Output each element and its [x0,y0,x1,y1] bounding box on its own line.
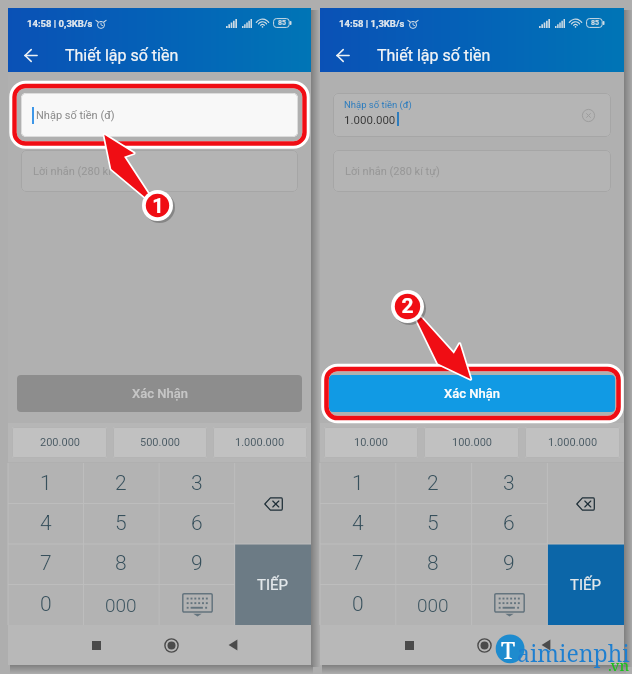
button[interactable]: 10.000 [324,427,418,458]
button[interactable]: 8 [83,543,159,584]
staticText: aimienphi [517,637,630,668]
staticText: 10.000 [354,436,388,449]
button[interactable]: Nhập số tiền (đ) [333,93,611,137]
button[interactable]: Backspace [547,463,624,544]
button[interactable]: Back [326,38,360,72]
button[interactable]: Recent apps [52,625,140,665]
button[interactable]: 4 [8,503,83,543]
button[interactable]: 1 [320,463,395,503]
button[interactable]: 8 [395,543,471,584]
staticText: 85 [278,19,287,27]
staticText: 9 [503,551,515,576]
button[interactable]: 000 [83,584,159,625]
staticText: 6 [503,511,515,536]
button[interactable]: 200.000 [12,427,107,458]
button[interactable]: Back [14,38,48,72]
staticText: 3 [503,471,515,496]
button[interactable]: 5 [83,503,159,543]
button[interactable]: Hide keyboard [159,584,235,625]
staticText: 200.000 [40,436,80,449]
button[interactable]: 1.000.000 [525,427,620,458]
staticText: 6 [191,511,203,536]
button[interactable]: 5 [395,503,471,543]
button[interactable]: TIẾP [235,544,311,625]
button[interactable]: Home [453,625,516,665]
staticText: Lời nhắn (280 kí tự) [345,165,440,178]
button[interactable]: 9 [159,543,235,584]
button[interactable]: 1 [8,463,83,503]
staticText: 85 [591,19,600,27]
button[interactable]: Xác Nhận [329,375,615,412]
button[interactable]: Nhập số tiền (đ) [21,93,298,137]
button[interactable]: 3 [159,463,235,503]
button[interactable]: Back [516,625,576,665]
staticText: 000 [417,594,449,616]
button[interactable]: 1.000.000 [213,427,307,458]
staticText: 0 [40,592,52,617]
button[interactable]: Back [203,625,263,665]
staticText: 9 [191,551,203,576]
button[interactable]: Home [140,625,203,665]
button[interactable]: 4 [320,503,395,543]
other: Hide keyboard [182,593,213,617]
staticText: Thiết lập số tiền [377,46,491,65]
staticText: TIẾP [570,576,602,594]
staticText: 1.000.000 [548,436,598,449]
staticText: Nhập số tiền (đ) [36,109,115,122]
staticText: TIẾP [257,576,289,594]
button[interactable]: 9 [471,543,547,584]
staticText: 5 [115,511,127,536]
button[interactable]: 7 [320,543,395,584]
staticText: 100.000 [452,436,492,449]
staticText: 4 [40,511,52,536]
staticText: Nhập số tiền (đ) [344,99,412,110]
button[interactable]: Hide keyboard [471,584,547,625]
button[interactable]: 6 [159,503,235,543]
staticText: 3 [191,471,203,496]
button[interactable]: 100.000 [424,427,519,458]
staticText: 1 [40,471,52,496]
button[interactable]: 6 [471,503,547,543]
staticText: 7 [40,551,52,576]
button[interactable]: Xác Nhận [17,375,302,412]
other: Hide keyboard [494,593,525,617]
staticText: 4 [352,511,364,536]
staticText: 5 [427,511,439,536]
staticText: Xác Nhận [132,386,188,401]
staticText: Lời nhắn (280 kí tự) [33,165,128,178]
staticText: 7 [352,551,364,576]
button[interactable]: 3 [471,463,547,503]
button[interactable]: 2 [395,463,471,503]
button[interactable]: 2 [83,463,159,503]
staticText: Xác Nhận [444,386,500,401]
button[interactable]: Backspace [235,463,311,544]
staticText: 2 [115,471,127,496]
staticText: 8 [115,551,127,576]
staticText: 1.000.000 [344,113,396,126]
button[interactable]: Recent apps [365,625,453,665]
staticText: 2 [401,294,414,319]
staticText: .vn [608,655,630,674]
button[interactable]: 0 [320,584,395,625]
staticText: 000 [105,594,137,616]
staticText: 0 [352,592,364,617]
staticText: 500.000 [140,436,180,449]
button[interactable]: 000 [395,584,471,625]
button[interactable]: Lời nhắn (280 kí tự) [333,150,611,192]
button[interactable]: 7 [8,543,83,584]
staticText: 14:58 | 1,3KB/s [339,18,405,29]
button[interactable]: 500.000 [113,427,207,458]
staticText: 14:58 | 0,3KB/s [27,18,93,29]
button[interactable]: 0 [8,584,83,625]
staticText: 2 [427,471,439,496]
button[interactable]: Lời nhắn (280 kí tự) [21,150,298,192]
staticText: Thiết lập số tiền [65,46,179,65]
staticText: 1 [352,471,364,496]
button[interactable]: Clear text [578,105,598,125]
staticText: 1 [152,194,164,217]
staticText: T [501,634,516,665]
button[interactable]: TIẾP [547,544,624,625]
staticText: 1.000.000 [235,436,285,449]
staticText: 8 [427,551,439,576]
